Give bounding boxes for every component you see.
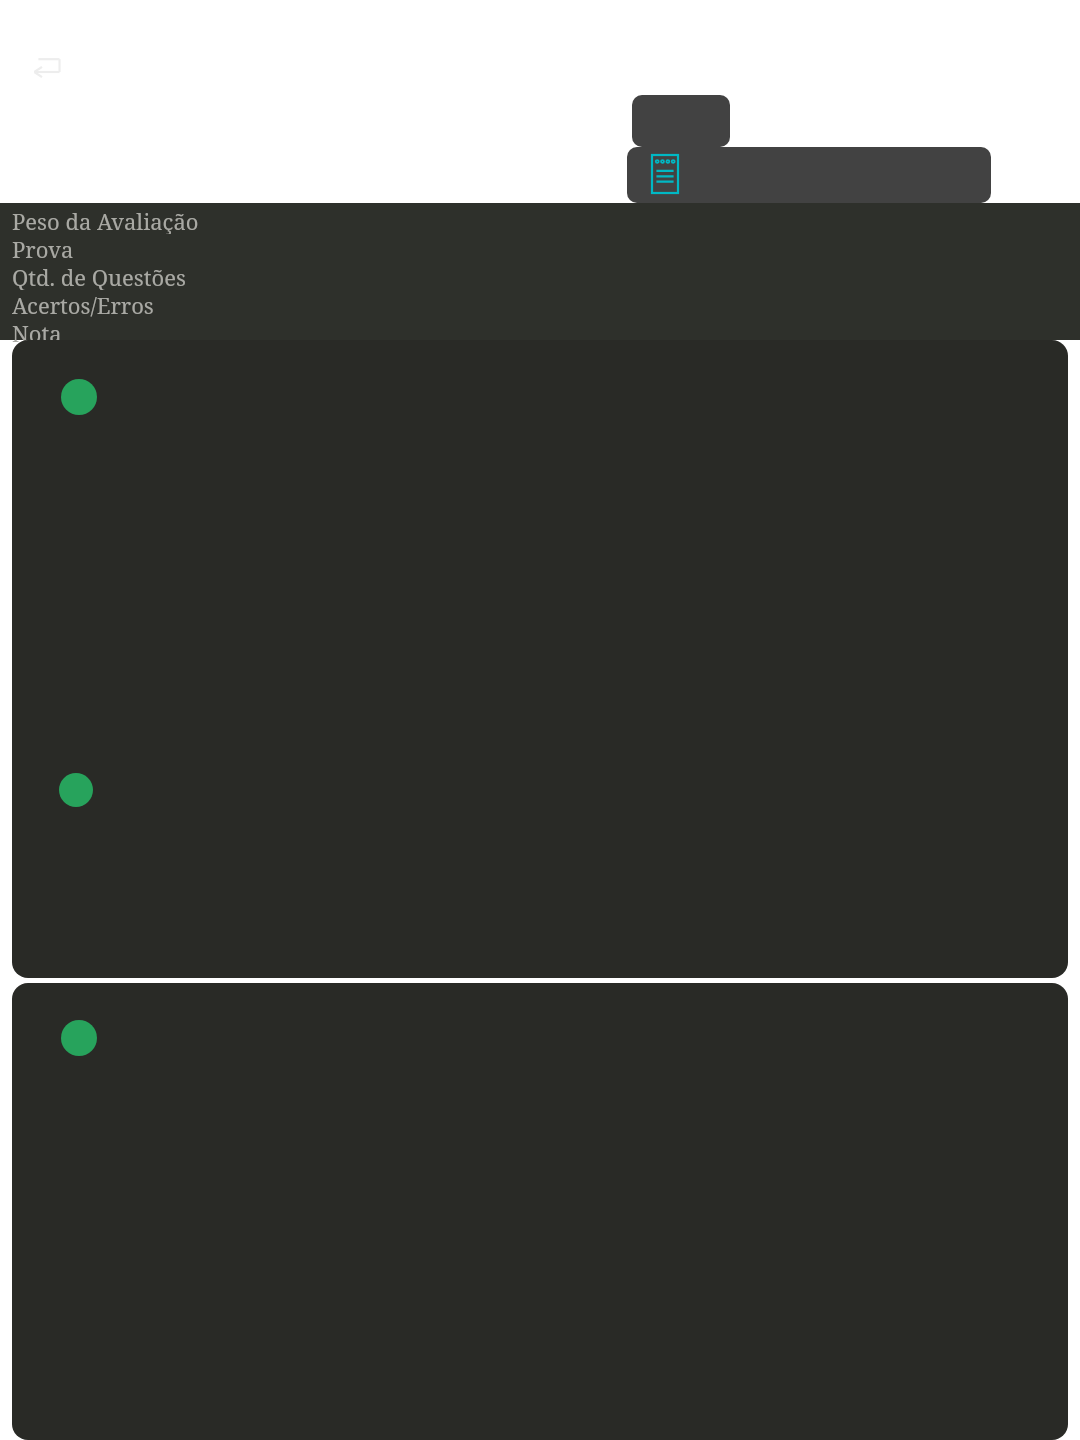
button[interactable] bbox=[12, 983, 1068, 1440]
staticText: Acertos/Erros bbox=[12, 290, 154, 318]
button[interactable]: Menu bbox=[632, 95, 730, 147]
staticText: Qtd. de Questões bbox=[12, 262, 186, 290]
button[interactable] bbox=[12, 340, 1068, 978]
button[interactable]: Back bbox=[24, 48, 72, 88]
staticText: Nota bbox=[12, 318, 62, 343]
staticText: Peso da Avaliação bbox=[12, 206, 199, 234]
button[interactable]: Notes bbox=[627, 147, 991, 203]
staticText: Prova bbox=[12, 234, 74, 262]
